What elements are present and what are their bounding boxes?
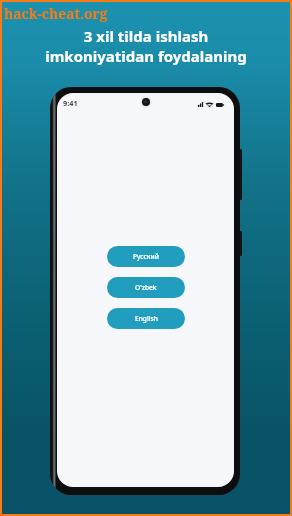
- staticText: English: [135, 314, 158, 323]
- button[interactable]: Русский: [107, 246, 185, 267]
- staticText: hack-cheat.org: [4, 4, 108, 23]
- button[interactable]: Power button: [237, 231, 242, 256]
- staticText: Русский: [133, 252, 159, 261]
- button[interactable]: Volume buttons: [237, 149, 242, 200]
- button[interactable]: O'zbek: [107, 277, 185, 298]
- button[interactable]: English: [107, 308, 185, 329]
- staticText: O'zbek: [135, 283, 157, 292]
- staticText: 9:41: [63, 98, 78, 108]
- staticText: 3 xil tilda ishlash imkoniyatidan foydal…: [0, 26, 292, 66]
